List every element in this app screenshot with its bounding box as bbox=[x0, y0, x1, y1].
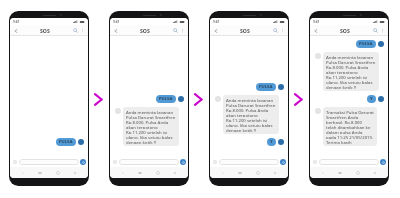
staticText: ulang. Jika setuju balas bbox=[326, 79, 373, 84]
staticText: PULSA bbox=[59, 139, 73, 145]
button[interactable]: Y bbox=[367, 95, 376, 103]
button[interactable]: Anda meminta layanan bbox=[223, 95, 279, 134]
button[interactable]: Apps bbox=[36, 169, 44, 177]
staticText: telah ditambahkan ke bbox=[326, 124, 371, 129]
staticText: Y bbox=[370, 96, 373, 102]
button[interactable]: Back bbox=[71, 169, 79, 177]
button[interactable]: Send bbox=[280, 159, 286, 165]
staticText: Rp.11.200 setelah isi bbox=[126, 129, 168, 134]
staticText: SOS bbox=[340, 27, 350, 34]
staticText: Pulsa Darurat Smartfren bbox=[226, 102, 276, 107]
staticText: 9:41 bbox=[313, 20, 320, 24]
staticText: Pulsa Darurat Smartfren bbox=[326, 59, 376, 64]
staticText: Rp.11.200 setelah isi bbox=[226, 117, 268, 122]
staticText: Anda meminta layanan bbox=[226, 97, 274, 102]
staticText: berhasil. Rp.8.000 bbox=[326, 119, 362, 124]
staticText: SOS bbox=[240, 27, 250, 34]
button[interactable]: Add attachment bbox=[312, 159, 318, 165]
button[interactable] bbox=[119, 159, 179, 165]
button[interactable]: PULSA bbox=[356, 40, 376, 48]
button[interactable] bbox=[219, 159, 279, 165]
button[interactable]: PULSA bbox=[256, 83, 276, 91]
button[interactable]: Send bbox=[380, 159, 386, 165]
button[interactable]: Back bbox=[171, 169, 179, 177]
staticText: ulang. Jika setuju balas bbox=[226, 122, 273, 127]
staticText: PULSA bbox=[159, 96, 173, 102]
staticText: dengan ketik Y bbox=[226, 127, 257, 132]
staticText: Smartfren Anda bbox=[326, 114, 359, 119]
staticText: Anda meminta layanan bbox=[326, 54, 374, 59]
staticText: SOS bbox=[140, 27, 150, 34]
button[interactable]: Search bbox=[272, 27, 279, 34]
button[interactable]: Send bbox=[80, 159, 86, 165]
button[interactable]: Anda meminta layanan bbox=[123, 107, 179, 146]
button[interactable]: PULSA bbox=[156, 95, 176, 103]
button[interactable]: Back bbox=[271, 169, 279, 177]
button[interactable]: Apps bbox=[336, 169, 344, 177]
button[interactable]: Apps bbox=[236, 169, 244, 177]
staticText: ulang. Jika setuju balas bbox=[126, 134, 173, 139]
staticText: Rp.11.200 setelah isi bbox=[326, 74, 368, 79]
staticText: PULSA bbox=[359, 41, 373, 47]
button[interactable]: Home bbox=[354, 169, 362, 177]
button[interactable]: Anda meminta layanan bbox=[323, 52, 379, 91]
button[interactable]: Add attachment bbox=[212, 159, 218, 165]
button[interactable]: Back bbox=[12, 27, 19, 34]
staticText: SOS bbox=[40, 27, 50, 34]
button[interactable]: Y bbox=[267, 138, 276, 146]
staticText: Y bbox=[270, 139, 273, 145]
button[interactable]: Search bbox=[172, 27, 179, 34]
staticText: akan terpotong bbox=[126, 124, 158, 129]
button[interactable]: Add attachment bbox=[12, 159, 18, 165]
button[interactable]: Add attachment bbox=[112, 159, 118, 165]
button[interactable]: Search bbox=[72, 27, 79, 34]
staticText: akan terpotong bbox=[326, 69, 358, 74]
button[interactable]: Back bbox=[371, 169, 379, 177]
button[interactable]: PULSA bbox=[56, 138, 76, 146]
button[interactable]: Home bbox=[154, 169, 162, 177]
staticText: Terima kasih bbox=[326, 139, 352, 144]
button[interactable]: Apps bbox=[136, 169, 144, 177]
button[interactable]: Back bbox=[312, 27, 319, 34]
button[interactable]: Back bbox=[112, 27, 119, 34]
button[interactable]: More options bbox=[279, 27, 286, 34]
staticText: PULSA bbox=[259, 84, 273, 90]
staticText: dalam pulsa Anda bbox=[326, 129, 363, 134]
staticText: Anda meminta layanan bbox=[126, 109, 174, 114]
staticText: Rp.8.000. Pulsa Anda bbox=[126, 119, 169, 124]
staticText: Rp.8.000. Pulsa Anda bbox=[326, 64, 369, 69]
staticText: Transaksi Pulsa Darurat bbox=[326, 109, 374, 114]
button[interactable]: More options bbox=[79, 27, 86, 34]
button[interactable]: More options bbox=[379, 27, 386, 34]
staticText: pada 11:25 21/05/2019. bbox=[326, 134, 374, 139]
button[interactable]: Transaksi Pulsa Darurat bbox=[323, 107, 377, 146]
staticText: akan terpotong bbox=[226, 112, 258, 117]
staticText: 9:41 bbox=[213, 20, 220, 24]
button[interactable]: Search bbox=[372, 27, 379, 34]
button[interactable] bbox=[319, 159, 379, 165]
staticText: Rp.8.000. Pulsa Anda bbox=[226, 107, 269, 112]
staticText: dengan ketik Y bbox=[326, 84, 357, 89]
button[interactable]: Home bbox=[54, 169, 62, 177]
button[interactable]: Home bbox=[254, 169, 262, 177]
staticText: Pulsa Darurat Smartfren bbox=[126, 114, 176, 119]
button[interactable] bbox=[19, 159, 79, 165]
button[interactable]: Send bbox=[180, 159, 186, 165]
button[interactable]: More options bbox=[179, 27, 186, 34]
staticText: dengan ketik Y bbox=[126, 139, 157, 144]
staticText: 9:41 bbox=[113, 20, 120, 24]
staticText: 9:41 bbox=[13, 20, 20, 24]
button[interactable]: Back bbox=[212, 27, 219, 34]
